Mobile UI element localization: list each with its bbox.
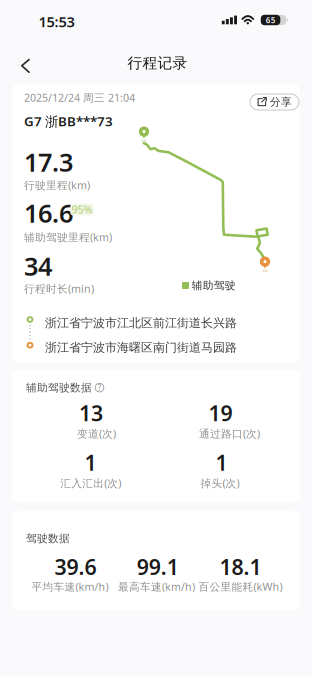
staticText: 1 — [84, 448, 96, 477]
staticText: 驾驶数据 — [26, 532, 70, 545]
staticText: 39.6 — [55, 552, 97, 581]
staticText: 1 — [215, 448, 227, 477]
staticText: 65 — [266, 15, 276, 25]
staticText: 15:53 — [38, 12, 74, 31]
staticText: G7 浙BB***73 — [24, 112, 113, 130]
staticText: 辅助驾驶里程(km) — [24, 230, 112, 244]
staticText: 99.1 — [137, 552, 179, 581]
staticText: 掉头(次) — [200, 476, 239, 490]
staticText: 17.3 — [24, 145, 73, 179]
staticText: 辅助驾驶数据 — [26, 381, 92, 394]
staticText: 19 — [208, 399, 232, 427]
staticText: 行程时长(min) — [24, 281, 94, 296]
staticText: 行程记录 — [127, 54, 187, 72]
staticText: 2025/12/24 周三 21:04 — [24, 90, 135, 105]
staticText: 浙江省宁波市海曙区南门街道马园路 — [45, 340, 237, 355]
staticText: 浙江省宁波市江北区前江街道长兴路 — [45, 316, 237, 330]
staticText: 95% — [71, 202, 92, 216]
staticText: 汇入汇出(次) — [60, 476, 121, 490]
staticText: 13 — [79, 399, 103, 427]
staticText: ? — [97, 382, 101, 393]
button[interactable]: 返回 — [13, 51, 38, 81]
staticText: 分享 — [270, 95, 292, 108]
staticText: 通过路口(次) — [199, 426, 260, 441]
staticText: 变道(次) — [77, 426, 116, 441]
button[interactable]: 辅助驾驶数据说明 — [95, 383, 104, 392]
staticText: 34 — [24, 249, 52, 283]
staticText: 最高车速(km/h) — [118, 579, 195, 594]
staticText: 16.6 — [24, 196, 73, 230]
staticText: 18.1 — [219, 552, 261, 581]
staticText: 行驶里程(km) — [24, 178, 90, 192]
staticText: 辅助驾驶 — [192, 279, 236, 292]
staticText: 百公里能耗(kWh) — [198, 579, 282, 594]
button[interactable]: 分享 — [250, 94, 299, 110]
staticText: 平均车速(km/h) — [31, 579, 108, 594]
